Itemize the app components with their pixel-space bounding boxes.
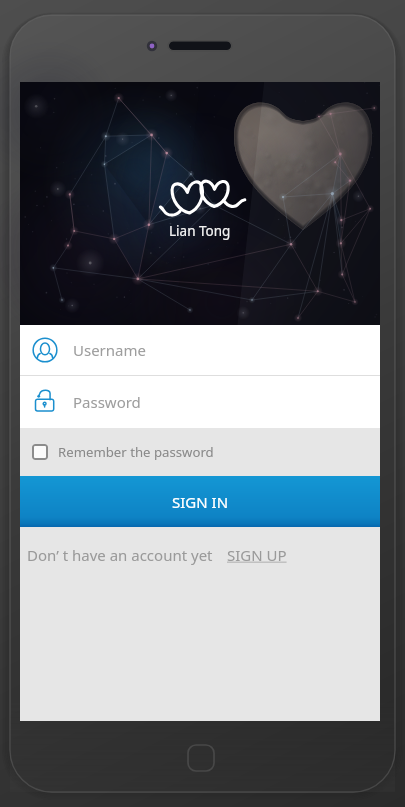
staticText: Remember the password <box>58 443 214 461</box>
staticText: Don’ t have an account yet <box>27 545 213 565</box>
button[interactable]: Username <box>20 325 380 375</box>
button[interactable]: Password <box>20 376 380 428</box>
staticText: SIGN UP <box>227 545 287 565</box>
other: Password <box>32 389 58 415</box>
staticText: SIGN IN <box>172 492 229 512</box>
button[interactable]: Remember the password <box>20 428 380 476</box>
button[interactable]: SIGN UP <box>225 539 289 571</box>
staticText: Username <box>73 340 146 360</box>
staticText: Password <box>73 392 141 412</box>
other: Username <box>32 337 58 363</box>
staticText: Lian Tong <box>169 222 231 240</box>
button[interactable]: SIGN IN <box>20 476 380 527</box>
